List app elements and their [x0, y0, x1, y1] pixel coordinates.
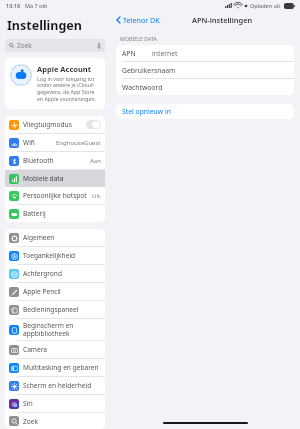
button[interactable]: Stel opnieuw in [116, 104, 294, 119]
button[interactable]: Zoek [5, 39, 105, 52]
staticText: Instellingen [7, 17, 82, 34]
button[interactable]: Vliegtuigmodus [86, 120, 101, 129]
staticText: Achtergrond [23, 269, 62, 278]
button[interactable]: Toegankelijkheid [5, 247, 105, 265]
staticText: EnghouseGuest [56, 139, 101, 147]
button[interactable]: Beginscherm en appbibliotheek [5, 319, 105, 341]
button[interactable]: Vliegtuigmodus [5, 116, 105, 134]
staticText: Uit [92, 192, 101, 200]
button[interactable]: Scherm en helderheid [5, 377, 105, 395]
staticText: Opladen uit [250, 2, 281, 9]
staticText: Apple Pencil [23, 287, 61, 296]
staticText: MOBIELE DATA [120, 35, 157, 42]
staticText: Log in voor toegang tot onder andere je … [37, 75, 100, 103]
staticText: Multitasking en gebaren [23, 363, 99, 372]
button[interactable]: Multitasking en gebaren [5, 359, 105, 377]
staticText: Scherm en helderheid [23, 381, 92, 390]
button[interactable]: Algemeen [5, 229, 105, 247]
staticText: Telenor DK [123, 15, 160, 25]
staticText: 10:18 [6, 2, 21, 9]
staticText: Siri [23, 399, 33, 408]
staticText: Vliegtuigmodus [23, 120, 72, 129]
staticText: Wifi [23, 138, 35, 147]
button[interactable]: Zoek [5, 413, 105, 429]
staticText: Batterij [23, 209, 46, 218]
button[interactable]: Telenor DK [114, 14, 162, 26]
button[interactable]: APN [116, 45, 294, 62]
button[interactable]: Mobiele data [5, 170, 105, 187]
button[interactable]: Siri [5, 395, 105, 413]
staticText: Zoek [23, 417, 39, 426]
button[interactable]: Bedieningspaneel [5, 301, 105, 319]
staticText: APN [122, 49, 136, 58]
staticText: Aan [90, 157, 101, 165]
staticText: Algemeen [23, 233, 55, 242]
button[interactable]: Achtergrond [5, 265, 105, 283]
button[interactable]: Persoonlijke hotspot [5, 187, 105, 205]
button[interactable]: Wifi [5, 134, 105, 152]
staticText: Persoonlijke hotspot [23, 191, 87, 200]
staticText: Ma 7 okt [25, 2, 48, 9]
button[interactable]: Camera [5, 341, 105, 359]
button[interactable]: Bluetooth [5, 152, 105, 170]
staticText: Bedieningspaneel [23, 305, 79, 314]
button[interactable]: Wachtwoord [116, 79, 294, 95]
staticText: APN-instellingen [192, 15, 253, 25]
staticText: Zoek [17, 41, 32, 50]
staticText: Gebruikersnaam [122, 66, 176, 75]
staticText: Camera [23, 345, 48, 354]
staticText: Toegankelijkheid [23, 251, 76, 260]
staticText: Stel opnieuw in [122, 107, 171, 116]
staticText: Apple Account [37, 64, 91, 74]
button[interactable]: Apple Account [5, 58, 105, 109]
staticText: Beginscherm en appbibliotheek [23, 321, 74, 338]
staticText: Bluetooth [23, 156, 54, 165]
button[interactable]: Apple Pencil [5, 283, 105, 301]
staticText: Wachtwoord [122, 83, 163, 92]
button[interactable]: Batterij [5, 205, 105, 222]
button[interactable]: Gebruikersnaam [116, 62, 294, 79]
staticText: internet [152, 49, 178, 58]
staticText: Mobiele data [23, 174, 64, 183]
